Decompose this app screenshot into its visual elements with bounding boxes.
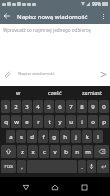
staticText: l [97, 133, 99, 141]
staticText: 5 [47, 103, 51, 111]
button[interactable]: cześć [36, 86, 73, 99]
button[interactable]: Send [96, 67, 110, 81]
button[interactable]: e [22, 115, 32, 128]
staticText: a [9, 133, 13, 141]
button[interactable]: p [99, 115, 109, 128]
button[interactable]: Recent apps [77, 180, 91, 194]
button[interactable]: 5 [44, 100, 54, 113]
button[interactable]: More options [96, 9, 110, 23]
button[interactable]: zamiast [73, 86, 110, 99]
staticText: k [85, 133, 89, 141]
button[interactable]: . [78, 160, 86, 173]
staticText: Napisz wiadomość [18, 71, 55, 77]
button[interactable]: q [1, 115, 10, 128]
staticText: 0 [102, 103, 106, 111]
staticText: 9 [91, 103, 95, 111]
button[interactable]: Voice input [87, 160, 96, 173]
staticText: w [16, 89, 21, 96]
button[interactable]: j [71, 130, 81, 143]
button[interactable]: Back [19, 180, 33, 194]
staticText: 2 [14, 103, 18, 111]
staticText: t [48, 118, 51, 126]
button[interactable]: y [55, 115, 65, 128]
button[interactable]: Attach file [0, 67, 14, 81]
staticText: cześć [48, 89, 62, 96]
staticText: o [91, 118, 95, 126]
button[interactable]: Enter [97, 160, 109, 173]
button[interactable]: 0 [99, 100, 109, 113]
button[interactable]: , [17, 160, 26, 173]
button[interactable]: ?123 [1, 160, 16, 173]
button[interactable]: 4 [33, 100, 43, 113]
staticText: r [37, 118, 40, 126]
staticText: 7 [69, 103, 73, 111]
staticText: c [43, 148, 46, 156]
button[interactable]: u [66, 115, 76, 128]
button[interactable]: 6 [55, 100, 65, 113]
staticText: g [52, 133, 56, 141]
staticText: zamiast [82, 89, 102, 96]
staticText: h [63, 133, 67, 141]
staticText: 99% [92, 1, 101, 7]
staticText: , [21, 163, 23, 171]
staticText: j [75, 133, 77, 141]
staticText: s [20, 133, 23, 141]
staticText: d [30, 133, 34, 141]
staticText: p [102, 118, 106, 126]
staticText: 8 [80, 103, 84, 111]
button[interactable]: g [49, 130, 59, 143]
button[interactable]: Shift [1, 145, 16, 158]
staticText: Napisz nową wiadomość [17, 12, 88, 20]
button[interactable]: t [44, 115, 54, 128]
button[interactable]: x [28, 145, 38, 158]
button[interactable]: h [60, 130, 70, 143]
button[interactable]: v [50, 145, 60, 158]
staticText: 3 [25, 103, 29, 111]
staticText: 4 [36, 103, 40, 111]
button[interactable]: z [17, 145, 27, 158]
button[interactable]: Back [0, 9, 14, 23]
button[interactable]: d [27, 130, 37, 143]
button[interactable]: f [38, 130, 48, 143]
button[interactable]: 3 [22, 100, 32, 113]
staticText: n [75, 148, 79, 156]
staticText: ?123 [4, 164, 13, 169]
staticText: w [14, 118, 19, 126]
staticText: u [69, 118, 73, 126]
staticText: x [31, 148, 35, 156]
button[interactable]: w [0, 86, 36, 99]
button[interactable]: Wprowadź co najmniej jednego odbiorcę [3, 23, 110, 37]
button[interactable]: 1 [1, 100, 10, 113]
button[interactable]: k [82, 130, 92, 143]
staticText: m [85, 148, 91, 156]
button[interactable]: c [39, 145, 49, 158]
button[interactable]: Backspace [94, 145, 109, 158]
staticText: e [25, 118, 29, 126]
button[interactable]: r [33, 115, 43, 128]
button[interactable]: Home [48, 180, 62, 194]
staticText: y [58, 118, 62, 126]
button[interactable]: i [77, 115, 87, 128]
staticText: q [4, 118, 8, 126]
staticText: v [53, 148, 57, 156]
button[interactable]: a [6, 130, 15, 143]
staticText: 1 [4, 103, 8, 111]
staticText: b [64, 148, 68, 156]
staticText: Wprowadź co najmniej jednego odbiorcę [3, 27, 91, 33]
staticText: 6 [58, 103, 62, 111]
button[interactable]: w [11, 115, 21, 128]
staticText: i [81, 118, 83, 126]
button[interactable]: o [88, 115, 98, 128]
staticText: z [21, 148, 24, 156]
button[interactable]: 9 [88, 100, 98, 113]
button[interactable]: 7 [66, 100, 76, 113]
button[interactable]: 2 [11, 100, 21, 113]
button[interactable]: b [61, 145, 71, 158]
staticText: . [81, 163, 83, 171]
button[interactable]: m [83, 145, 93, 158]
button[interactable]: l [93, 130, 103, 143]
button[interactable]: s [16, 130, 26, 143]
button[interactable]: 8 [77, 100, 87, 113]
button[interactable]: n [72, 145, 82, 158]
